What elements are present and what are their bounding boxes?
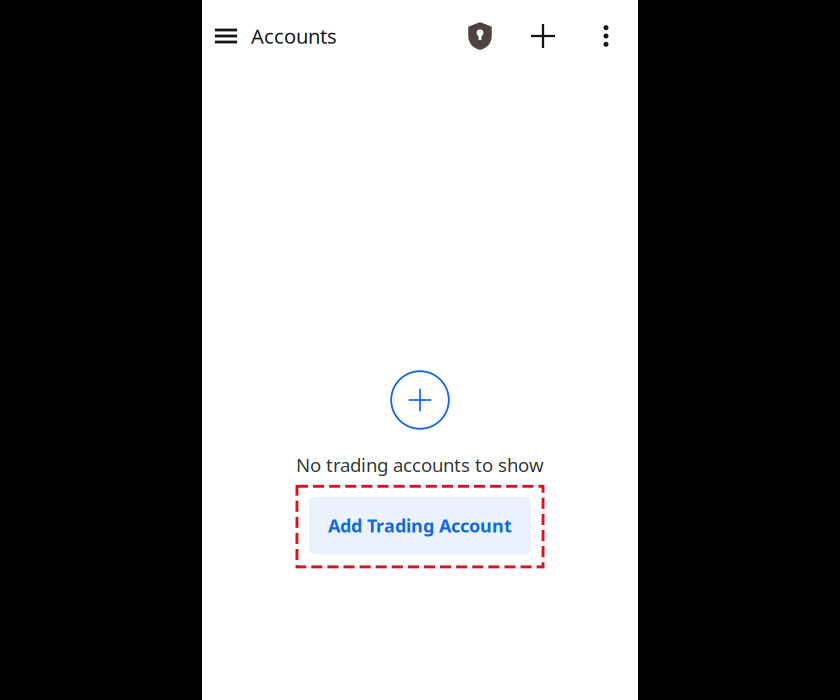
- button[interactable]: Add account: [521, 8, 565, 64]
- staticText: No trading accounts to show: [296, 452, 544, 477]
- staticText: Accounts: [251, 22, 337, 50]
- button[interactable]: Security: [458, 8, 502, 64]
- button[interactable]: More options: [584, 8, 628, 64]
- button[interactable]: Add Trading Account: [309, 497, 531, 554]
- staticText: Add Trading Account: [328, 513, 512, 538]
- button[interactable]: Menu: [203, 8, 249, 64]
